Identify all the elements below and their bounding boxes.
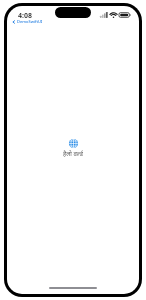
button[interactable]: Globe [63, 139, 83, 158]
other: Globe [69, 139, 78, 148]
button[interactable]: DemoSwiftUI [12, 19, 43, 24]
staticText: DemoSwiftUI [17, 19, 43, 24]
staticText: हैलो वर्ल्ड [63, 150, 83, 158]
staticText: 4:08 [18, 11, 32, 21]
